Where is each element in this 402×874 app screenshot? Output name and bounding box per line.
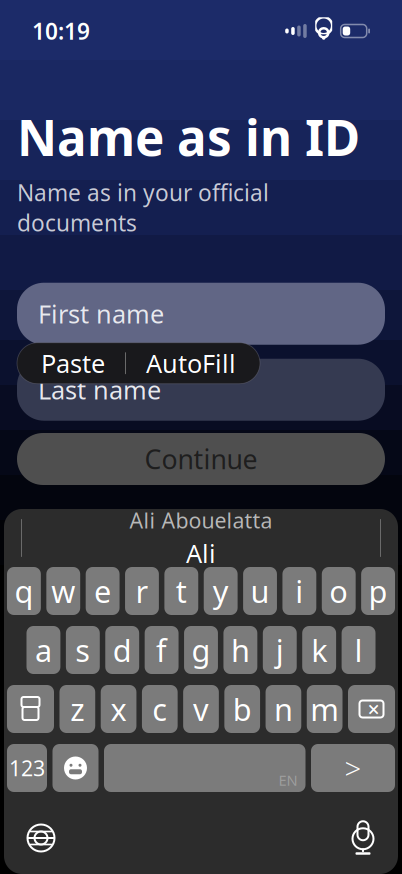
staticText: m (310, 689, 339, 729)
button[interactable]: m (307, 685, 342, 733)
staticText: × (367, 695, 379, 723)
button[interactable]: f (145, 626, 179, 674)
staticText: g (191, 630, 210, 670)
button[interactable]: AutoFill (126, 343, 256, 384)
staticText: l (355, 630, 363, 670)
staticText: y (213, 571, 229, 611)
button[interactable]: x (101, 685, 136, 733)
staticText: z (70, 689, 84, 729)
button[interactable]: u (243, 567, 277, 615)
button[interactable]: e (86, 567, 119, 615)
staticText: a (35, 630, 52, 670)
staticText: AutoFill (146, 346, 236, 380)
button[interactable]: Paste (21, 343, 125, 384)
button[interactable]: Dictate (350, 821, 376, 855)
staticText: Name as in your official documents (17, 177, 269, 238)
staticText: 10:19 (32, 16, 90, 46)
button[interactable]: Return (311, 744, 395, 792)
button[interactable]: l (342, 626, 375, 674)
staticText: v (193, 689, 209, 729)
button[interactable]: v (183, 685, 219, 733)
button[interactable]: n (266, 685, 301, 733)
button[interactable]: a (26, 626, 60, 674)
button[interactable]: Space (104, 744, 305, 792)
button[interactable]: Shift (7, 685, 54, 733)
button[interactable]: b (224, 685, 260, 733)
staticText: EN (278, 770, 297, 790)
button[interactable]: z (59, 685, 95, 733)
staticText: Paste (41, 346, 105, 380)
staticText: f (156, 630, 167, 670)
button[interactable]: c (142, 685, 178, 733)
button[interactable]: Delete (348, 685, 395, 733)
button[interactable]: t (164, 567, 198, 615)
button[interactable]: d (105, 626, 139, 674)
staticText: u (250, 571, 269, 611)
staticText: i (295, 571, 303, 611)
button[interactable]: w (46, 567, 80, 615)
button[interactable]: r (125, 567, 159, 615)
button[interactable]: p (361, 567, 395, 615)
button[interactable]: Last name (17, 359, 385, 421)
staticText: t (176, 571, 187, 611)
button[interactable]: First name (17, 283, 385, 345)
staticText: w (51, 571, 75, 611)
staticText: c (152, 689, 167, 729)
staticText: Last name (38, 373, 161, 406)
staticText: r (135, 571, 148, 611)
staticText: b (233, 689, 252, 729)
button[interactable]: Continue (17, 433, 385, 485)
staticText: 123 (9, 754, 45, 782)
staticText: x (111, 689, 127, 729)
staticText: Ali (186, 536, 216, 570)
button[interactable]: k (302, 626, 336, 674)
staticText: First name (38, 297, 164, 330)
staticText: Continue (144, 441, 257, 477)
staticText: q (14, 571, 33, 611)
staticText: h (231, 630, 250, 670)
button[interactable]: o (322, 567, 356, 615)
staticText: j (276, 630, 284, 670)
button[interactable]: q (7, 567, 41, 615)
staticText: e (94, 571, 111, 611)
button[interactable]: h (223, 626, 257, 674)
staticText: s (75, 630, 90, 670)
staticText: > (344, 748, 361, 787)
button[interactable]: j (263, 626, 297, 674)
button[interactable]: s (66, 626, 100, 674)
staticText: d (113, 630, 132, 670)
staticText: Name as in ID (17, 104, 360, 169)
staticText: p (369, 571, 388, 611)
button[interactable]: Ali Abouelatta (129, 506, 272, 570)
staticText: k (311, 630, 327, 670)
staticText: Ali Abouelatta (129, 506, 272, 534)
button[interactable]: Change keyboard (26, 823, 56, 853)
button[interactable]: Emoji (52, 744, 98, 792)
button[interactable]: y (204, 567, 237, 615)
staticText: n (274, 689, 293, 729)
staticText: o (329, 571, 348, 611)
button[interactable]: g (184, 626, 218, 674)
button[interactable]: i (282, 567, 316, 615)
button[interactable]: 123 (7, 744, 47, 792)
